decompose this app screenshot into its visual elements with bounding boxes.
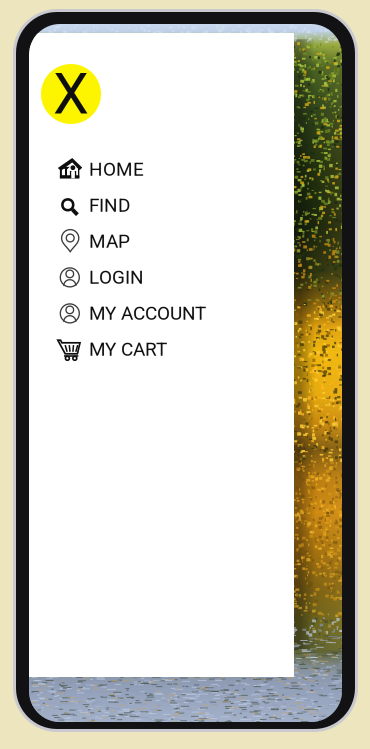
staticText: MY CART xyxy=(89,338,167,360)
button[interactable]: HOME xyxy=(29,151,294,187)
staticText: MY ACCOUNT xyxy=(89,302,206,324)
button[interactable]: LOGIN xyxy=(29,259,294,295)
button[interactable]: MAP xyxy=(29,223,294,259)
staticText: FIND xyxy=(89,194,130,216)
staticText: LOGIN xyxy=(89,266,144,288)
staticText: X xyxy=(53,60,89,128)
staticText: HOME xyxy=(89,158,144,180)
button[interactable]: MY CART xyxy=(29,331,294,367)
button[interactable]: Close menu xyxy=(41,64,101,124)
button[interactable]: FIND xyxy=(29,187,294,223)
button[interactable]: MY ACCOUNT xyxy=(29,295,294,331)
staticText: MAP xyxy=(89,230,130,252)
